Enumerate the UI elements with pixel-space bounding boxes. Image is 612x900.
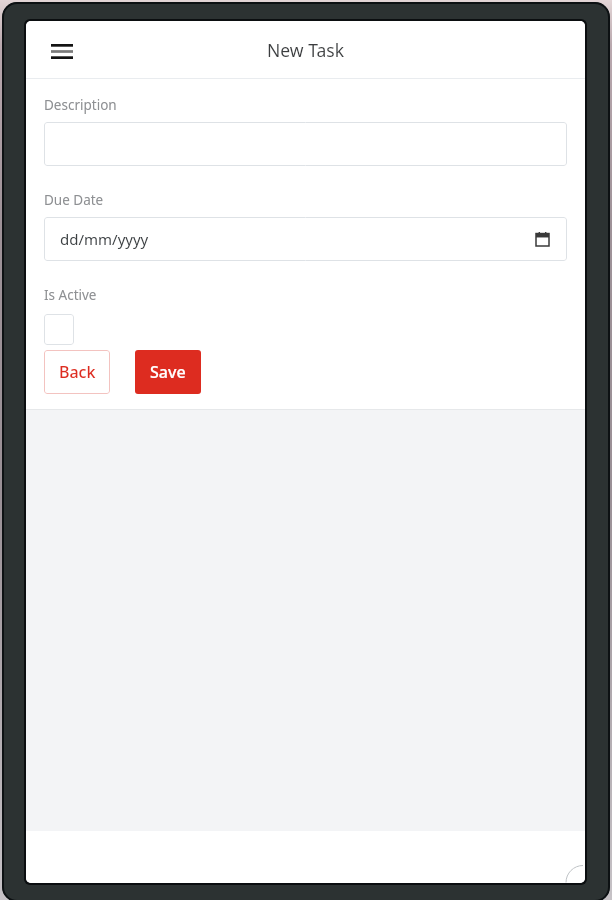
button[interactable] (44, 122, 567, 166)
staticText: Save (150, 361, 186, 383)
button[interactable]: dd/mm/yyyy (44, 217, 567, 261)
button[interactable]: Menu (42, 31, 82, 71)
staticText: Due Date (44, 191, 104, 209)
staticText: Is Active (44, 286, 97, 304)
staticText: New Task (267, 38, 344, 62)
button[interactable]: Is Active checkbox (44, 314, 74, 345)
staticText: dd/mm/yyyy (60, 229, 149, 249)
button[interactable]: Save (135, 350, 201, 394)
button[interactable]: Back (44, 350, 110, 394)
staticText: Description (44, 96, 117, 114)
staticText: Back (59, 361, 96, 383)
